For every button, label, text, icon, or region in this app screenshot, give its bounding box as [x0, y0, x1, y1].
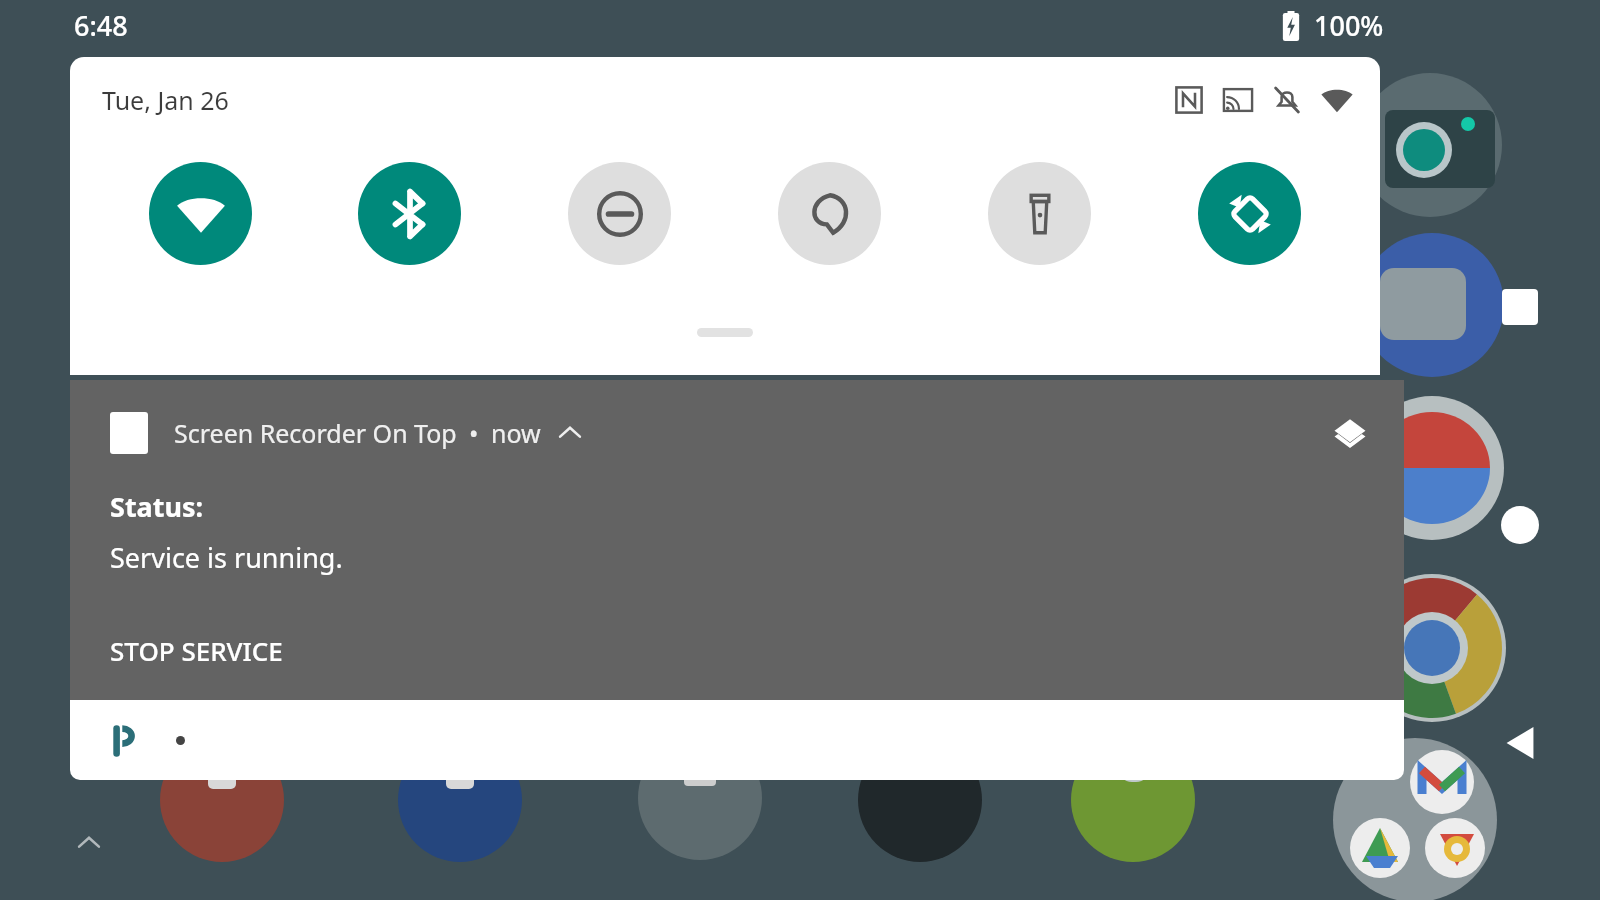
- button[interactable]: Recents: [1478, 265, 1562, 349]
- other: Ringer muted: [1272, 85, 1302, 115]
- button[interactable]: [70, 700, 1404, 780]
- button[interactable]: Wi-Fi: [149, 162, 252, 265]
- other: Cast: [1222, 84, 1254, 116]
- button[interactable]: Auto rotate: [1198, 162, 1301, 265]
- staticText: Tue, Jan 26: [102, 83, 229, 117]
- button[interactable]: Home: [1478, 483, 1562, 567]
- button[interactable]: Battery saver: [778, 162, 881, 265]
- button[interactable]: STOP SERVICE: [98, 625, 295, 676]
- other: Wi-Fi: [1320, 83, 1354, 117]
- staticText: 100%: [1314, 7, 1384, 44]
- button[interactable]: Back: [1478, 701, 1562, 785]
- staticText: Service is running.: [110, 539, 343, 576]
- staticText: •: [469, 416, 479, 450]
- staticText: Status:: [110, 488, 204, 525]
- button[interactable]: Do not disturb: [568, 162, 671, 265]
- button[interactable]: Flashlight: [988, 162, 1091, 265]
- button[interactable]: Screen Recorder On Top: [70, 380, 1404, 700]
- staticText: Screen Recorder On Top: [174, 416, 457, 450]
- other: NFC: [1174, 85, 1204, 115]
- staticText: 6:48: [74, 7, 128, 44]
- staticText: STOP SERVICE: [110, 633, 283, 668]
- staticText: now: [491, 416, 541, 450]
- other: Collapse: [557, 420, 583, 446]
- other: Layers: [1332, 415, 1368, 451]
- button[interactable]: Bluetooth: [358, 162, 461, 265]
